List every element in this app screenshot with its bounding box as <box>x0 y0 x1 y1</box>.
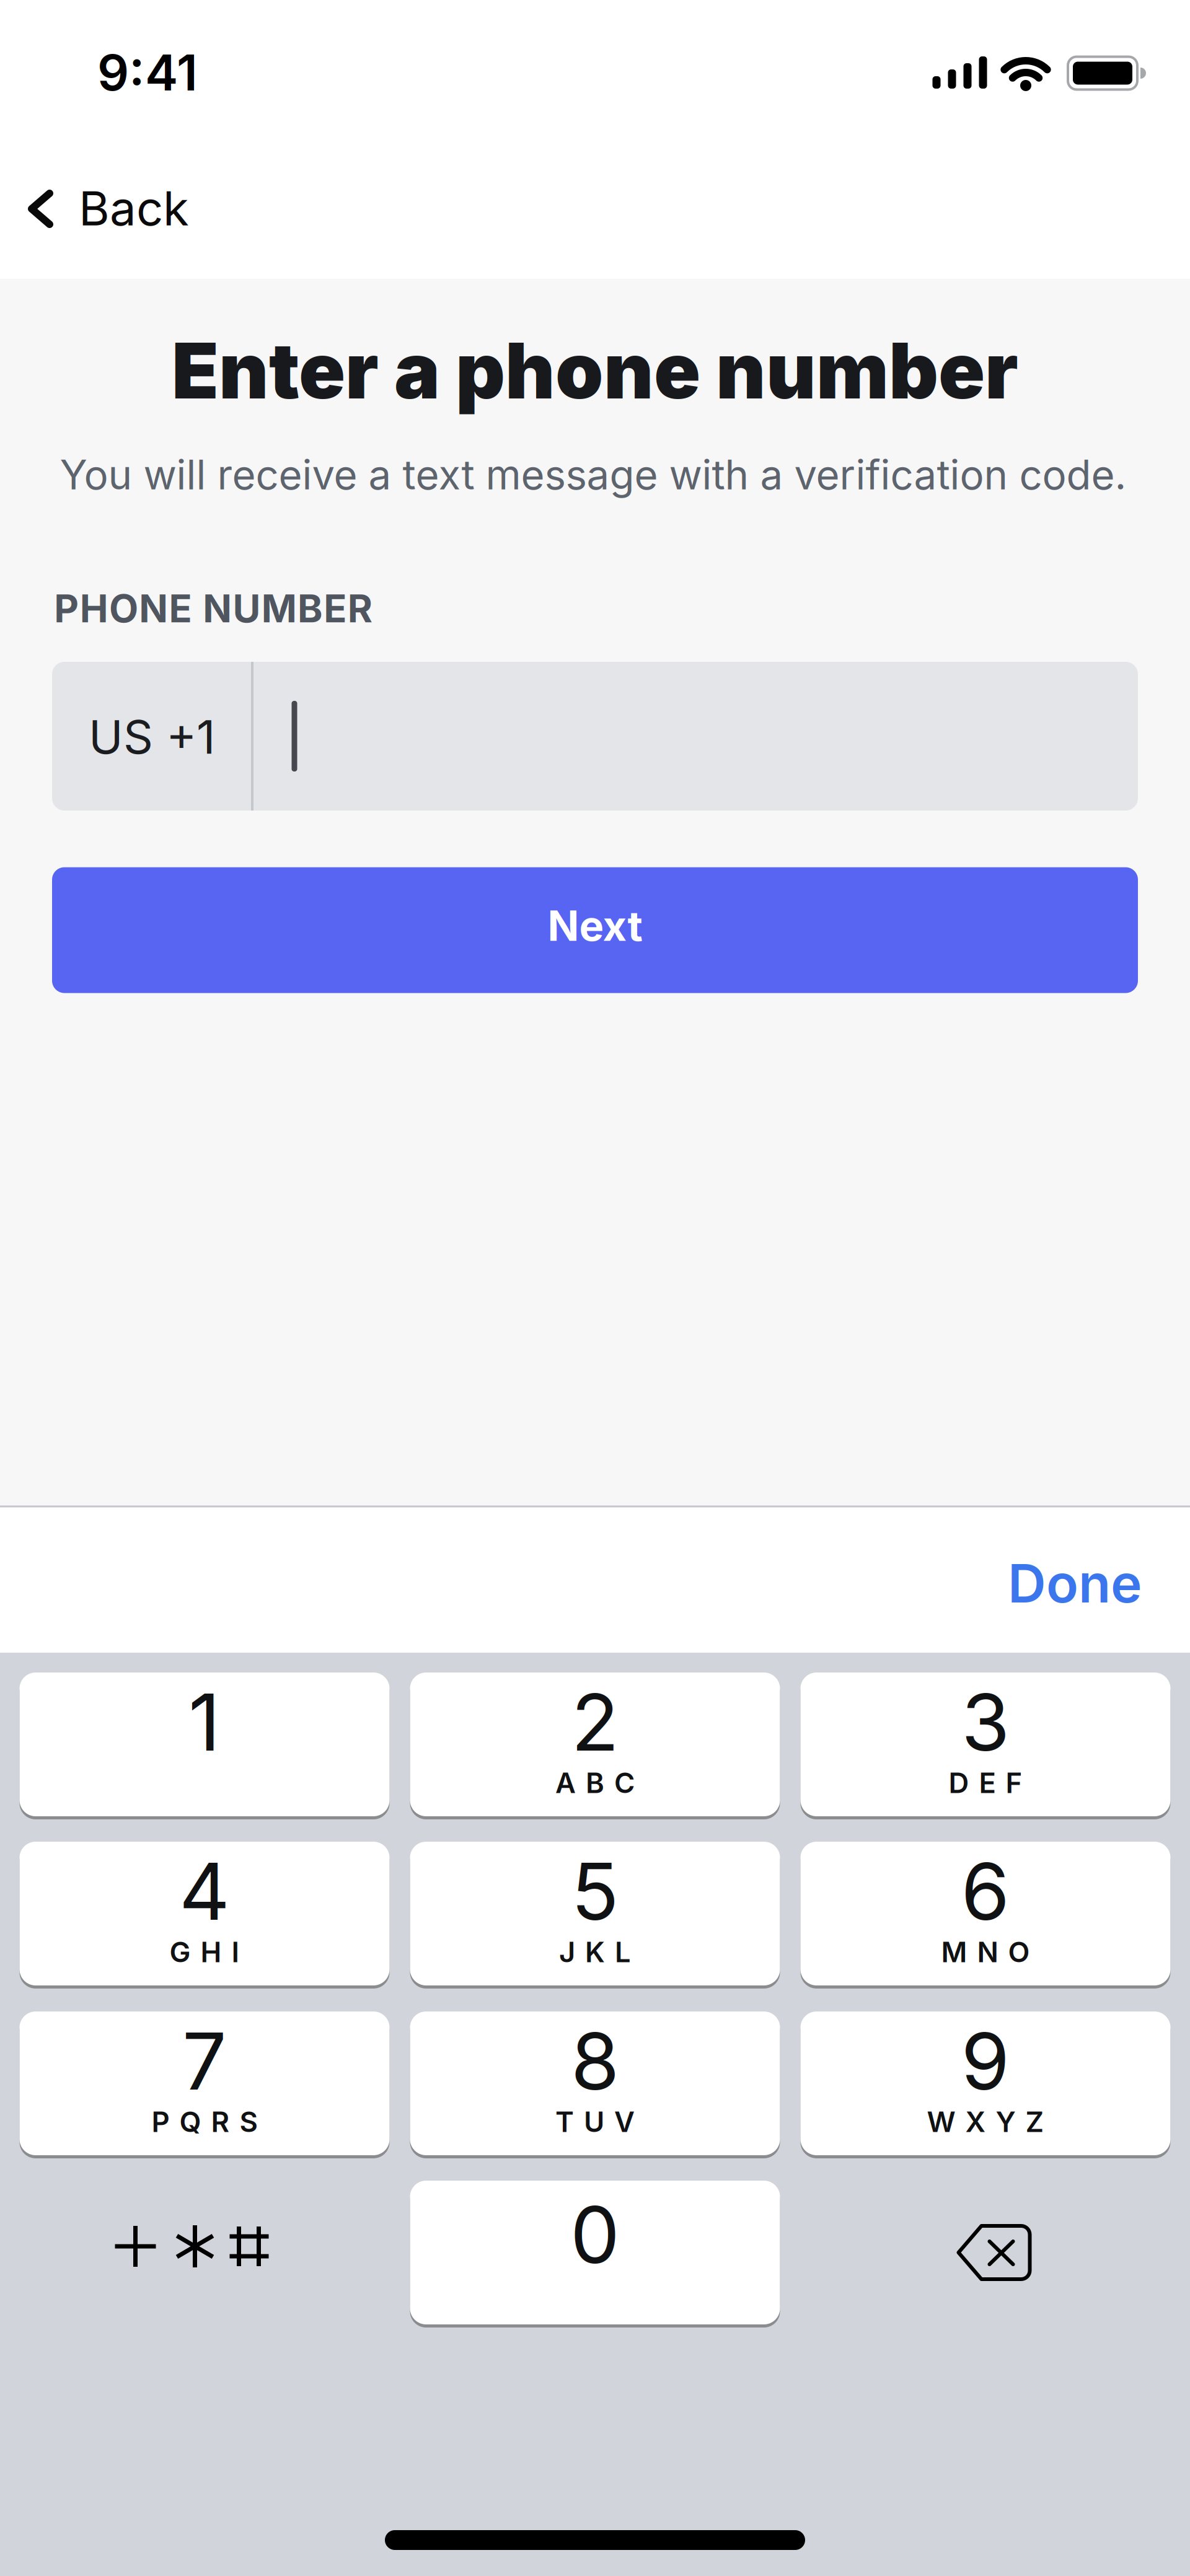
staticText: 8 <box>571 2015 619 2107</box>
button[interactable]: Back <box>19 175 217 243</box>
staticText: US +1 <box>89 710 215 764</box>
staticText: Back <box>79 180 189 236</box>
button[interactable]: Done <box>1008 1552 1142 1615</box>
button[interactable]: 6 <box>800 1842 1170 1985</box>
button[interactable]: 9 <box>800 2011 1170 2155</box>
staticText: DEF <box>949 1766 1022 1799</box>
staticText: GHI <box>170 1935 240 1969</box>
button[interactable]: US +1 <box>52 662 251 811</box>
button[interactable]: 2 <box>410 1673 780 1816</box>
staticText: JKL <box>559 1935 631 1969</box>
button[interactable]: Phone number <box>253 662 1138 811</box>
staticText: 4 <box>179 1845 230 1938</box>
staticText: Enter a phone number <box>172 325 1018 416</box>
button[interactable]: Symbols <box>20 2181 390 2324</box>
staticText: TUV <box>555 2105 635 2138</box>
staticText: 1 <box>188 1676 221 1768</box>
staticText: PHONE NUMBER <box>54 586 372 631</box>
staticText: 5 <box>571 1845 619 1938</box>
staticText: ABC <box>555 1766 635 1799</box>
staticText: MNO <box>941 1935 1030 1969</box>
staticText: 0 <box>570 2188 620 2281</box>
button[interactable]: 0 <box>410 2181 780 2324</box>
staticText: 3 <box>961 1676 1010 1768</box>
button[interactable]: 5 <box>410 1842 780 1985</box>
staticText: Done <box>1008 1552 1142 1615</box>
button[interactable]: 7 <box>20 2011 390 2155</box>
button[interactable]: Delete <box>800 2181 1170 2324</box>
staticText: 6 <box>961 1845 1010 1938</box>
button[interactable]: 8 <box>410 2011 780 2155</box>
button[interactable]: Next <box>52 867 1138 993</box>
staticText: PQRS <box>152 2105 258 2138</box>
staticText: 7 <box>182 2015 227 2107</box>
staticText: 2 <box>571 1676 619 1768</box>
button[interactable]: 3 <box>800 1673 1170 1816</box>
staticText: 9:41 <box>97 43 198 102</box>
staticText: 9 <box>961 2015 1010 2107</box>
button[interactable]: 1 <box>20 1673 390 1816</box>
staticText: Next <box>548 901 642 950</box>
staticText: You will receive a text message with a v… <box>60 451 1126 499</box>
button[interactable]: 4 <box>20 1842 390 1985</box>
staticText: WXYZ <box>927 2105 1044 2138</box>
